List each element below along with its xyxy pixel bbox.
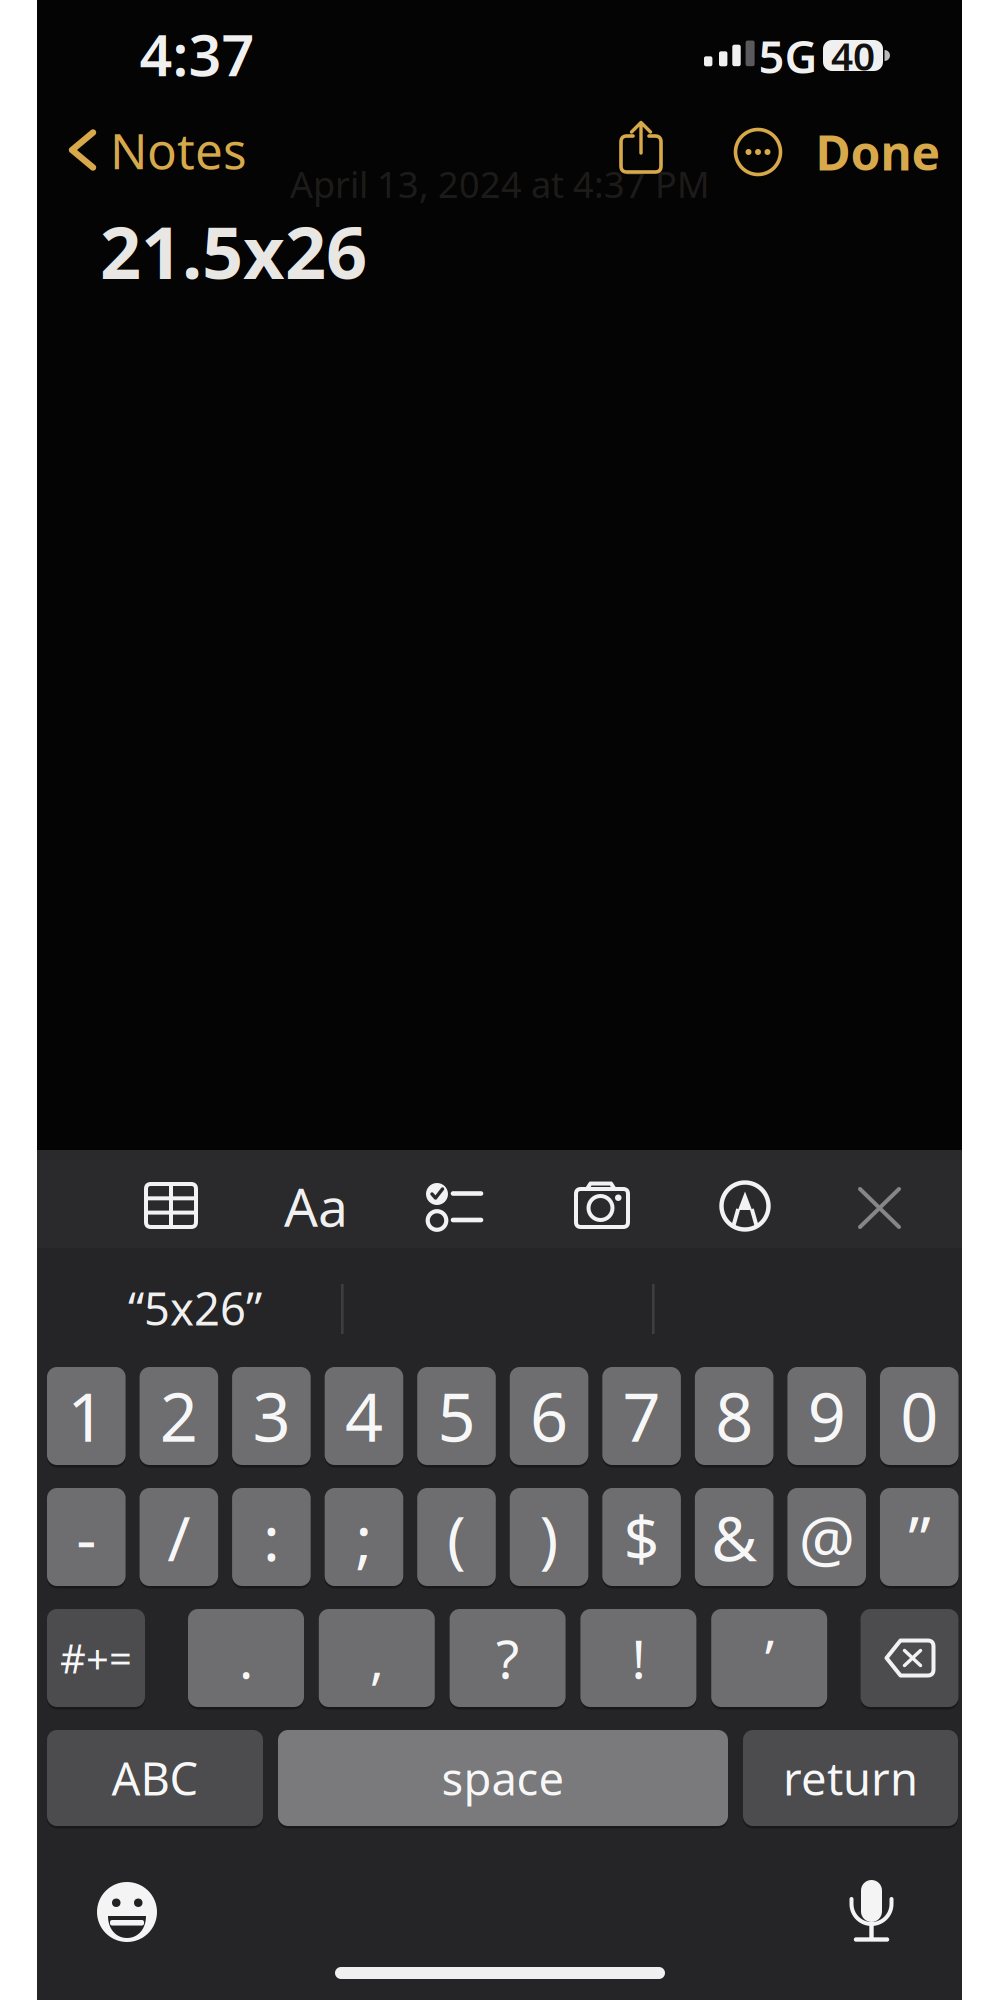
staticText: 0 [900, 1372, 938, 1460]
button[interactable]: @ [787, 1488, 866, 1586]
button[interactable]: ; [325, 1488, 403, 1586]
button[interactable]: Done [788, 130, 968, 174]
button[interactable]: “5x26” [55, 1276, 335, 1340]
staticText: 4:37 [139, 16, 254, 92]
button[interactable]: Emoji [95, 1880, 159, 1944]
staticText: @ [799, 1495, 855, 1579]
button[interactable]: Format [281, 1182, 351, 1230]
button[interactable]: Markup [719, 1180, 771, 1232]
staticText: , [370, 1623, 384, 1693]
button[interactable]: Dismiss keyboard [857, 1186, 902, 1230]
staticText: 2 [160, 1372, 198, 1460]
button[interactable]: ” [880, 1488, 958, 1586]
button[interactable]: 8 [695, 1367, 773, 1465]
button[interactable]: , [319, 1609, 435, 1707]
button[interactable]: Share [618, 120, 664, 176]
staticText: ! [631, 1623, 645, 1693]
button[interactable]: : [232, 1488, 311, 1586]
staticText: 5 [437, 1372, 475, 1460]
button[interactable]: 1 [47, 1367, 126, 1465]
staticText: 21.5x26 [100, 203, 367, 299]
staticText: . [239, 1623, 253, 1693]
button[interactable]: 3 [232, 1367, 311, 1465]
button[interactable]: More [734, 128, 782, 176]
staticText: Notes [110, 117, 247, 183]
staticText: - [76, 1495, 96, 1579]
staticText: ABC [111, 1748, 198, 1808]
staticText: 1 [67, 1372, 105, 1460]
button[interactable]: Insert table [143, 1181, 199, 1229]
button[interactable]: 4 [325, 1367, 403, 1465]
button[interactable]: 2 [140, 1367, 218, 1465]
staticText: ; [355, 1495, 372, 1579]
staticText: ’ [765, 1623, 774, 1693]
staticText: $ [624, 1495, 660, 1579]
button[interactable]: / [140, 1488, 218, 1586]
staticText: #+= [60, 1631, 132, 1684]
staticText: Done [815, 120, 940, 184]
staticText: ) [539, 1495, 558, 1579]
button[interactable]: space [278, 1730, 728, 1826]
staticText: 3 [252, 1372, 290, 1460]
button[interactable]: Delete [860, 1609, 958, 1707]
staticText: 5G [758, 26, 817, 86]
button[interactable]: . [188, 1609, 304, 1707]
staticText: “5x26” [128, 1278, 262, 1338]
staticText: 9 [808, 1372, 846, 1460]
staticText: 40 [831, 30, 875, 81]
button[interactable]: - [47, 1488, 126, 1586]
staticText: / [167, 1495, 190, 1579]
button[interactable]: & [695, 1488, 773, 1586]
staticText: ? [496, 1623, 519, 1693]
staticText: 4 [345, 1372, 383, 1460]
button[interactable]: 9 [787, 1367, 866, 1465]
staticText: space [441, 1748, 564, 1808]
button[interactable]: ) [510, 1488, 588, 1586]
staticText: ( [447, 1495, 466, 1579]
button[interactable]: #+= [47, 1609, 145, 1707]
button[interactable]: Camera [573, 1181, 633, 1229]
staticText: & [711, 1495, 757, 1579]
staticText: 6 [530, 1372, 568, 1460]
button[interactable]: 7 [602, 1367, 681, 1465]
staticText: Aa [284, 1171, 348, 1241]
button[interactable]: $ [602, 1488, 681, 1586]
button[interactable]: 6 [510, 1367, 588, 1465]
button[interactable]: return [743, 1730, 958, 1826]
staticText: 7 [623, 1372, 661, 1460]
button[interactable]: Checklist [424, 1181, 486, 1229]
button[interactable]: ( [417, 1488, 496, 1586]
staticText: return [783, 1748, 918, 1808]
staticText: ” [908, 1495, 930, 1579]
button[interactable]: ’ [711, 1609, 827, 1707]
button[interactable]: Notes [68, 128, 247, 172]
staticText: : [263, 1495, 280, 1579]
button[interactable]: ! [580, 1609, 696, 1707]
staticText: 8 [715, 1372, 753, 1460]
button[interactable]: ? [450, 1609, 566, 1707]
button[interactable]: 5 [417, 1367, 496, 1465]
button[interactable]: 0 [880, 1367, 958, 1465]
staticText: April 13, 2024 at 4:37 PM [290, 160, 710, 208]
button[interactable]: Dictation [848, 1878, 894, 1944]
button[interactable]: ABC [47, 1730, 263, 1826]
